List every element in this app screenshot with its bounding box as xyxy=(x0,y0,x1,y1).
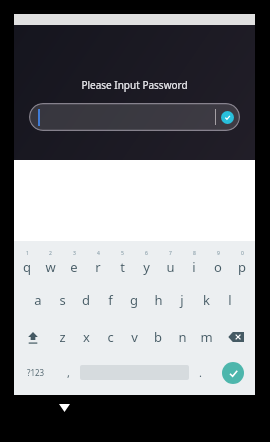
button[interactable]: 6 xyxy=(134,244,158,281)
staticText: o xyxy=(214,258,222,276)
staticText: d xyxy=(82,291,90,309)
staticText: Please Input Password xyxy=(81,78,188,92)
button[interactable]: 1 xyxy=(15,244,38,281)
staticText: , xyxy=(67,365,70,380)
button[interactable]: , xyxy=(57,356,80,389)
staticText: 6 xyxy=(145,250,148,257)
button[interactable]: k xyxy=(194,281,218,318)
button[interactable]: 2 xyxy=(38,244,62,281)
staticText: i xyxy=(192,258,196,276)
button[interactable]: n xyxy=(170,318,194,356)
staticText: f xyxy=(108,291,113,309)
staticText: 4 xyxy=(97,250,100,257)
button[interactable]: h xyxy=(146,281,170,318)
button[interactable]: s xyxy=(50,281,74,318)
staticText: b xyxy=(154,328,162,346)
button[interactable]: Enter xyxy=(222,362,244,384)
staticText: g xyxy=(130,291,138,309)
staticText: 0 xyxy=(241,250,244,257)
button[interactable]: x xyxy=(74,318,98,356)
button[interactable]: c xyxy=(98,318,122,356)
staticText: s xyxy=(59,291,66,309)
staticText: 3 xyxy=(73,250,76,257)
button[interactable]: v xyxy=(122,318,146,356)
button[interactable]: g xyxy=(122,281,146,318)
button[interactable]: Backspace xyxy=(218,318,254,356)
staticText: q xyxy=(23,258,31,276)
staticText: h xyxy=(154,291,163,309)
staticText: w xyxy=(45,258,56,276)
button[interactable]: 0 xyxy=(230,244,254,281)
staticText: u xyxy=(166,258,175,276)
staticText: t xyxy=(120,258,125,276)
button[interactable]: ?123 xyxy=(15,356,57,389)
staticText: m xyxy=(200,328,213,346)
button[interactable]: Hide keyboard xyxy=(14,397,114,442)
button[interactable]: Shift xyxy=(15,318,50,356)
button[interactable]: 9 xyxy=(206,244,230,281)
staticText: e xyxy=(70,258,78,276)
button[interactable]: 4 xyxy=(86,244,110,281)
staticText: a xyxy=(34,291,42,309)
button[interactable]: Submit password xyxy=(221,111,234,124)
staticText: c xyxy=(107,328,114,346)
staticText: 8 xyxy=(193,250,196,257)
staticText: 7 xyxy=(169,250,172,257)
staticText: k xyxy=(203,291,210,309)
staticText: v xyxy=(131,328,138,346)
staticText: ?123 xyxy=(27,367,45,378)
button[interactable]: 5 xyxy=(110,244,134,281)
staticText: y xyxy=(143,258,150,276)
button[interactable]: z xyxy=(50,318,74,356)
button[interactable]: 8 xyxy=(182,244,206,281)
staticText: r xyxy=(95,258,101,276)
staticText: 1 xyxy=(26,250,29,257)
button[interactable]: l xyxy=(218,281,242,318)
button[interactable]: f xyxy=(98,281,122,318)
button[interactable]: Submit password xyxy=(29,103,240,131)
button[interactable]: 7 xyxy=(158,244,182,281)
button[interactable]: d xyxy=(74,281,98,318)
button[interactable]: . xyxy=(189,356,212,389)
button[interactable]: a xyxy=(26,281,50,318)
button[interactable]: 3 xyxy=(62,244,86,281)
staticText: j xyxy=(180,291,184,309)
staticText: z xyxy=(59,328,66,346)
staticText: n xyxy=(178,328,187,346)
staticText: p xyxy=(238,258,246,276)
button[interactable]: b xyxy=(146,318,170,356)
staticText: . xyxy=(199,365,202,380)
button[interactable]: m xyxy=(194,318,218,356)
staticText: 5 xyxy=(121,250,124,257)
staticText: l xyxy=(228,291,232,309)
staticText: x xyxy=(83,328,90,346)
staticText: 2 xyxy=(49,250,52,257)
button[interactable]: j xyxy=(170,281,194,318)
staticText: 9 xyxy=(217,250,220,257)
